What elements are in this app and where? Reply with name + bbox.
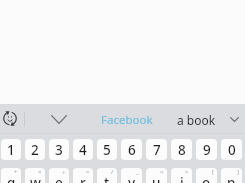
- staticText: 2: [31, 141, 39, 159]
- staticText: a book: [177, 112, 216, 128]
- staticText: [: [212, 168, 214, 176]
- button[interactable]: 7: [146, 139, 167, 160]
- staticText: p: [227, 174, 236, 183]
- button[interactable]: More suggestions: [224, 104, 245, 133]
- button[interactable]: Expand suggestions: [44, 104, 74, 133]
- button[interactable]: o: [196, 168, 217, 183]
- staticText: y: [128, 174, 136, 183]
- button[interactable]: a book: [170, 104, 222, 133]
- button[interactable]: Emoji: [0, 104, 19, 133]
- button[interactable]: r: [73, 168, 93, 183]
- staticText: 7: [153, 141, 161, 159]
- staticText: >: [185, 168, 189, 176]
- staticText: e: [55, 174, 63, 183]
- button[interactable]: 5: [97, 139, 117, 160]
- button[interactable]: 1: [1, 139, 21, 160]
- staticText: ÷: [62, 168, 66, 176]
- button[interactable]: 2: [25, 139, 45, 160]
- staticText: 8: [178, 141, 186, 159]
- button[interactable]: q: [1, 168, 21, 183]
- staticText: /: [111, 168, 114, 176]
- button[interactable]: u: [146, 168, 167, 183]
- button[interactable]: i: [171, 168, 192, 183]
- button[interactable]: 0: [221, 139, 242, 160]
- button[interactable]: Facebook: [92, 104, 164, 133]
- button[interactable]: e: [49, 168, 69, 183]
- staticText: t: [104, 174, 110, 183]
- button[interactable]: 4: [73, 139, 93, 160]
- staticText: _: [136, 168, 139, 176]
- staticText: ]: [237, 168, 239, 176]
- staticText: 3: [55, 141, 63, 159]
- staticText: w: [30, 174, 41, 183]
- staticText: u: [152, 174, 161, 183]
- button[interactable]: 8: [171, 139, 192, 160]
- staticText: +: [14, 168, 18, 176]
- staticText: 4: [79, 141, 87, 159]
- staticText: i: [180, 174, 184, 183]
- staticText: 1: [7, 141, 15, 159]
- staticText: Facebook: [101, 112, 153, 128]
- staticText: r: [80, 174, 86, 183]
- staticText: 5: [103, 141, 111, 159]
- staticText: =: [86, 168, 90, 176]
- button[interactable]: t: [97, 168, 117, 183]
- button[interactable]: p: [221, 168, 242, 183]
- button[interactable]: 3: [49, 139, 69, 160]
- button[interactable]: 6: [121, 139, 142, 160]
- staticText: q: [7, 174, 16, 183]
- button[interactable]: y: [121, 168, 142, 183]
- staticText: 0: [228, 141, 236, 159]
- staticText: <: [160, 168, 164, 176]
- button[interactable]: 9: [196, 139, 217, 160]
- staticText: 9: [203, 141, 211, 159]
- staticText: 6: [128, 141, 136, 159]
- button[interactable]: w: [25, 168, 45, 183]
- staticText: ×: [38, 168, 42, 176]
- staticText: o: [202, 174, 211, 183]
